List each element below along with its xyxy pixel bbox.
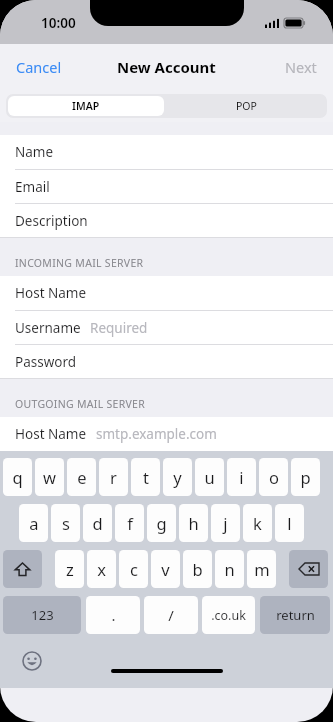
button[interactable]: 123	[3, 596, 81, 634]
button[interactable]: p	[291, 458, 320, 496]
staticText: Description	[15, 212, 88, 230]
staticText: Name	[15, 143, 54, 161]
button[interactable]: Shift	[3, 550, 42, 588]
button[interactable]: j	[211, 504, 240, 542]
staticText: return	[276, 606, 315, 624]
button[interactable]: t	[131, 458, 160, 496]
button[interactable]: Cancel	[0, 49, 78, 85]
staticText: r	[110, 466, 117, 488]
staticText: Host Name	[15, 284, 87, 302]
staticText: Next	[285, 57, 317, 77]
button[interactable]: d	[83, 504, 112, 542]
staticText: p	[300, 466, 311, 488]
button[interactable]: y	[163, 458, 192, 496]
staticText: New Account	[117, 57, 216, 77]
button[interactable]: l	[275, 504, 304, 542]
button[interactable]: o	[259, 458, 288, 496]
button[interactable]: v	[151, 550, 180, 588]
button[interactable]: Backspace	[289, 550, 328, 588]
staticText: Required	[90, 319, 148, 337]
staticText: n	[224, 558, 235, 580]
staticText: f	[127, 512, 133, 534]
button[interactable]: Next	[269, 49, 333, 85]
button[interactable]: b	[183, 550, 212, 588]
button[interactable]: Host Name	[0, 276, 333, 310]
staticText: t	[143, 466, 149, 488]
staticText: c	[130, 558, 138, 580]
staticText: d	[92, 512, 103, 534]
button[interactable]: q	[3, 458, 32, 496]
button[interactable]: w	[35, 458, 64, 496]
staticText: w	[43, 466, 56, 488]
button[interactable]: k	[243, 504, 272, 542]
button[interactable]: z	[55, 550, 84, 588]
button[interactable]: u	[195, 458, 224, 496]
staticText: o	[269, 466, 279, 488]
button[interactable]: a	[19, 504, 48, 542]
staticText: OUTGOING MAIL SERVER	[15, 397, 146, 411]
staticText: e	[77, 466, 87, 488]
button[interactable]: c	[119, 550, 148, 588]
button[interactable]: POP	[166, 94, 327, 118]
staticText: u	[204, 466, 215, 488]
staticText: Email	[15, 178, 50, 196]
staticText: x	[97, 558, 106, 580]
button[interactable]: f	[115, 504, 144, 542]
button[interactable]: IMAP	[8, 96, 164, 116]
button[interactable]: .	[86, 596, 140, 634]
staticText: a	[29, 512, 39, 534]
staticText: y	[173, 466, 182, 488]
staticText: smtp.example.com	[96, 425, 217, 443]
button[interactable]: Name	[0, 135, 333, 169]
staticText: j	[223, 512, 228, 534]
button[interactable]: g	[147, 504, 176, 542]
button[interactable]: s	[51, 504, 80, 542]
staticText: v	[161, 558, 170, 580]
button[interactable]: Username	[0, 311, 333, 344]
staticText: s	[62, 512, 70, 534]
button[interactable]: x	[87, 550, 116, 588]
staticText: m	[254, 558, 270, 580]
staticText: l	[287, 512, 292, 534]
staticText: 123	[31, 606, 54, 624]
staticText: g	[156, 512, 167, 534]
button[interactable]: Password	[0, 345, 333, 378]
staticText: INCOMING MAIL SERVER	[15, 256, 144, 270]
staticText: b	[192, 558, 203, 580]
button[interactable]: /	[144, 596, 198, 634]
button[interactable]: Emoji keyboard	[20, 649, 44, 673]
button[interactable]: return	[260, 596, 330, 634]
staticText: h	[188, 512, 199, 534]
staticText: k	[253, 512, 262, 534]
staticText: Host Name	[15, 425, 87, 443]
button[interactable]: Host Name	[0, 417, 333, 451]
staticText: i	[239, 466, 244, 488]
button[interactable]: i	[227, 458, 256, 496]
button[interactable]: m	[247, 550, 276, 588]
button[interactable]: n	[215, 550, 244, 588]
button[interactable]: .co.uk	[202, 596, 255, 634]
staticText: z	[66, 558, 74, 580]
staticText: IMAP	[72, 99, 100, 113]
staticText: Cancel	[16, 57, 62, 77]
button[interactable]: Email	[0, 170, 333, 203]
button[interactable]: r	[99, 458, 128, 496]
button[interactable]: e	[67, 458, 96, 496]
staticText: Username	[15, 319, 81, 337]
button[interactable]: h	[179, 504, 208, 542]
staticText: q	[12, 466, 23, 488]
staticText: .co.uk	[211, 607, 246, 624]
staticText: Password	[15, 353, 77, 371]
staticText: 10:00	[41, 14, 76, 32]
button[interactable]: Description	[0, 204, 333, 237]
staticText: /	[168, 605, 174, 625]
staticText: POP	[236, 99, 257, 113]
staticText: .	[111, 605, 116, 625]
